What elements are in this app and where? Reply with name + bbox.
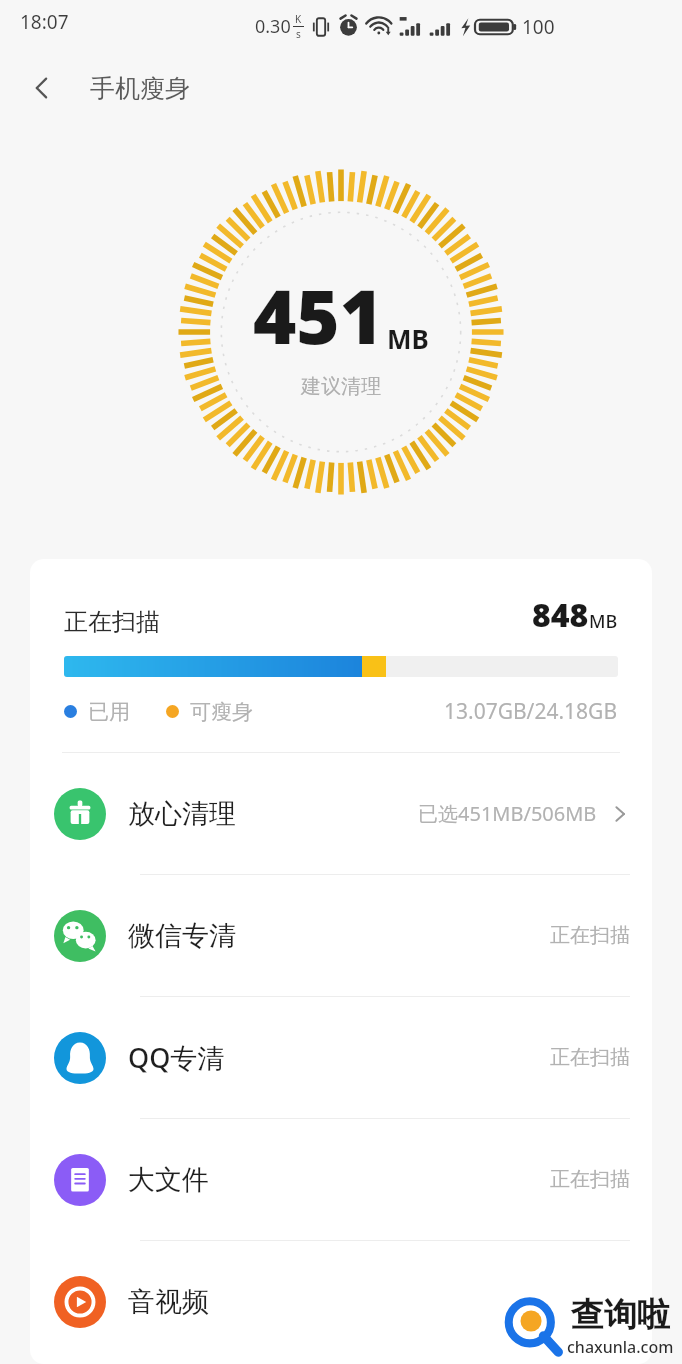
- staticText: 正在扫描: [550, 923, 630, 948]
- staticText: 音视频: [128, 1285, 209, 1319]
- staticText: MB: [589, 609, 618, 634]
- button[interactable]: 微信专清: [30, 875, 652, 996]
- staticText: 正在扫描: [550, 1167, 630, 1192]
- staticText: 手机瘦身: [90, 73, 190, 104]
- button[interactable]: 放心清理: [30, 753, 652, 874]
- staticText: 正在扫描: [550, 1045, 630, 1070]
- staticText: MB: [387, 321, 429, 356]
- staticText: s: [296, 27, 301, 41]
- staticText: QQ专清: [128, 1039, 225, 1076]
- staticText: 正在扫描: [64, 607, 160, 637]
- staticText: 18:07: [20, 9, 69, 35]
- staticText: 451: [253, 265, 384, 366]
- staticText: 已选451MB/506MB: [418, 800, 597, 827]
- staticText: 查询啦: [571, 1294, 670, 1336]
- button[interactable]: 音视频: [30, 1241, 652, 1362]
- button[interactable]: QQ专清: [30, 997, 652, 1118]
- staticText: chaxunla.com: [567, 1336, 674, 1358]
- staticText: 大文件: [128, 1163, 209, 1197]
- staticText: 已用: [88, 699, 130, 725]
- button[interactable]: 大文件: [30, 1119, 652, 1240]
- staticText: 13.07GB/24.18GB: [444, 697, 618, 726]
- staticText: 848: [532, 593, 589, 637]
- staticText: K: [295, 12, 302, 26]
- staticText: 0.30: [255, 14, 291, 39]
- staticText: 建议清理: [301, 374, 381, 399]
- staticText: 100: [522, 14, 555, 40]
- button[interactable]: Back: [14, 60, 70, 116]
- staticText: 微信专清: [128, 919, 236, 953]
- staticText: 放心清理: [128, 797, 236, 831]
- staticText: 可瘦身: [190, 699, 253, 725]
